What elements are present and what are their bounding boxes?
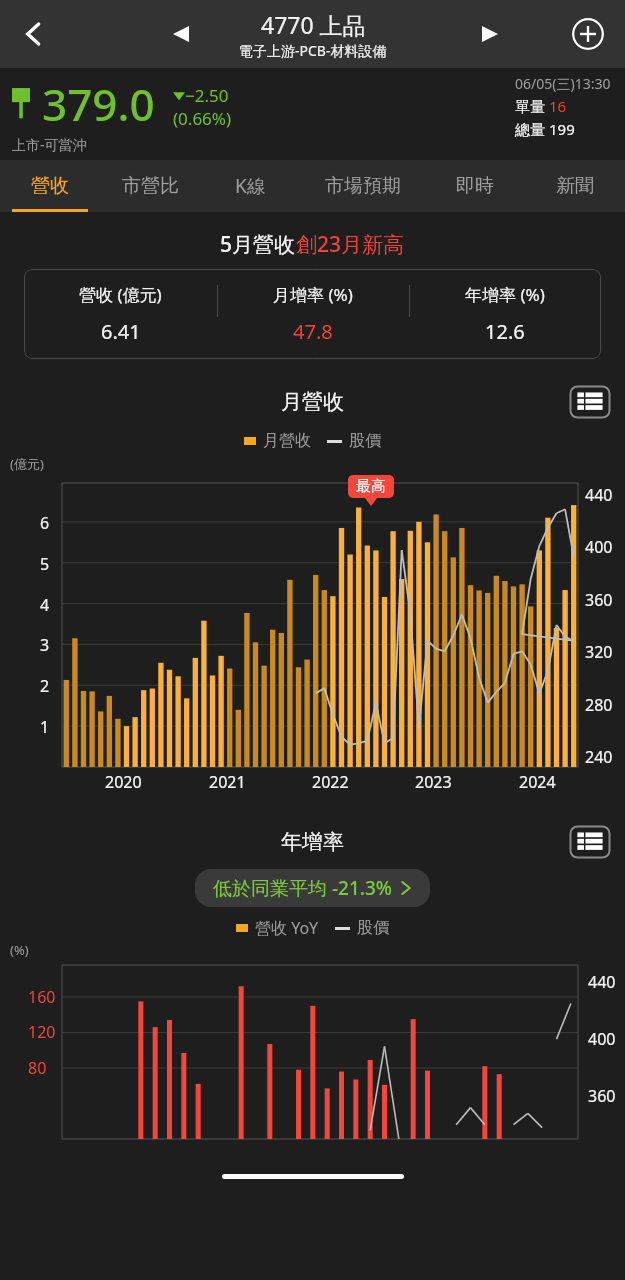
button[interactable]: Show as table [569, 825, 611, 859]
staticText: 股價 [349, 431, 381, 451]
staticText: 80 [28, 1057, 47, 1079]
button[interactable]: Next stock [467, 11, 513, 57]
staticText: 2024 [519, 771, 556, 793]
staticText: 年增率 [281, 829, 344, 855]
staticText: 2020 [105, 771, 142, 793]
button[interactable]: Add to watchlist [563, 9, 613, 59]
staticText: 47.8 [293, 318, 333, 345]
staticText: 400 [588, 1028, 616, 1050]
staticText: 400 [585, 536, 613, 558]
staticText: 年增率 (%) [465, 283, 545, 306]
staticText: 股價 [357, 918, 389, 938]
button[interactable]: Previous stock [158, 11, 204, 57]
staticText: 120 [28, 1021, 56, 1043]
staticText: 5 [40, 553, 50, 575]
staticText: 市場預期 [325, 174, 401, 198]
staticText: 4770 上品 [261, 9, 366, 40]
staticText: (0.66%) [173, 107, 232, 130]
staticText: 12.6 [485, 318, 525, 345]
staticText: 即時 [456, 174, 494, 198]
staticText: 6.41 [101, 318, 141, 345]
staticText: 營收 [31, 174, 69, 198]
staticText: 上市-可當沖 [12, 135, 87, 154]
staticText: 新聞 [556, 174, 594, 198]
staticText: (億元) [10, 455, 44, 473]
button[interactable]: 新聞 [525, 160, 625, 212]
button[interactable]: Back [8, 8, 60, 60]
staticText: 379.0 [42, 74, 155, 134]
staticText: 最高 [356, 477, 386, 496]
staticText: 160 [28, 986, 56, 1008]
staticText: 營收 (億元) [79, 283, 162, 306]
staticText: 市營比 [122, 174, 179, 198]
staticText: 320 [585, 641, 613, 663]
staticText: 創23月新高 [296, 230, 405, 259]
staticText: 240 [585, 746, 613, 768]
staticText: 440 [588, 971, 616, 993]
staticText: K線 [235, 173, 266, 199]
staticText: 2 [40, 675, 50, 697]
staticText: 360 [585, 589, 613, 611]
staticText: 電子上游-PCB-材料設備 [239, 41, 387, 60]
button[interactable]: 即時 [425, 160, 525, 212]
staticText: 5月營收 [220, 230, 296, 259]
staticText: 月營收 [263, 431, 311, 451]
staticText: 單量 [515, 96, 549, 116]
staticText: 280 [585, 694, 613, 716]
staticText: 月增率 (%) [273, 283, 353, 306]
staticText: 低於同業平均 -21.3% [213, 875, 392, 901]
staticText: 營收 YoY [255, 917, 319, 939]
staticText: 總量 [515, 119, 549, 139]
staticText: (%) [10, 941, 29, 959]
staticText: 2022 [312, 771, 349, 793]
staticText: 4 [40, 594, 50, 616]
button[interactable]: K線 [200, 160, 300, 212]
staticText: 199 [549, 119, 575, 139]
staticText: 月營收 [281, 389, 344, 415]
staticText: 2021 [209, 771, 246, 793]
staticText: 2023 [415, 771, 452, 793]
staticText: 06/05(三)13:30 [515, 74, 611, 93]
staticText: 360 [588, 1085, 616, 1107]
button[interactable]: Show as table [569, 385, 611, 419]
button[interactable]: 市營比 [100, 160, 200, 212]
button[interactable]: 營收 (億元) [24, 269, 601, 359]
button[interactable]: 營收 [0, 160, 100, 212]
staticText: −2.50 [185, 84, 229, 107]
staticText: 16 [549, 96, 567, 116]
button[interactable]: 市場預期 [300, 160, 425, 212]
button[interactable]: 低於同業平均 -21.3% [195, 869, 430, 907]
staticText: 440 [585, 484, 613, 506]
staticText: 6 [40, 512, 50, 534]
staticText: 1 [40, 716, 50, 738]
staticText: 3 [40, 634, 50, 656]
